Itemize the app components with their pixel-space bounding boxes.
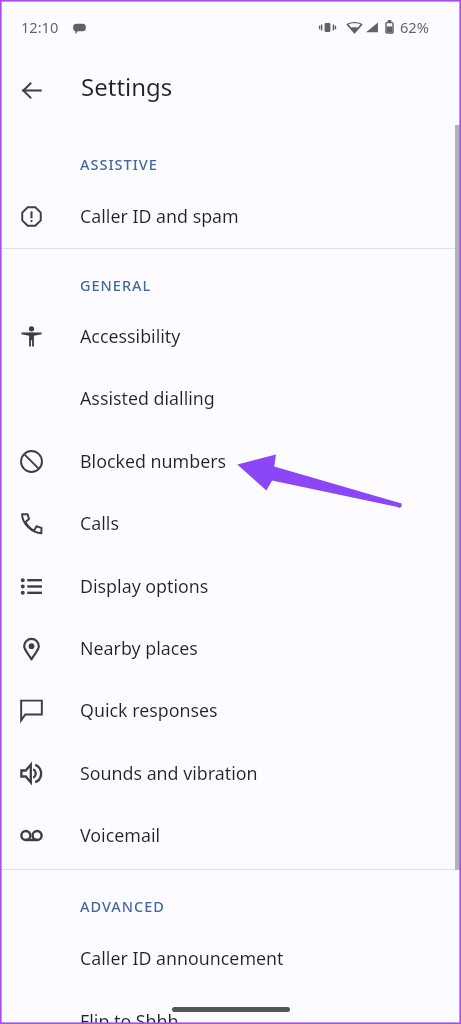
staticText: Assisted dialling [80,386,215,410]
button[interactable]: Calls [0,492,461,554]
staticText: Nearby places [80,636,198,660]
staticText: Accessibility [80,324,181,348]
staticText: Sounds and vibration [80,761,258,785]
button[interactable]: Voicemail [0,804,461,866]
staticText: Blocked numbers [80,449,227,473]
button[interactable]: Quick responses [0,679,461,741]
staticText: 12:10 [21,17,59,37]
button[interactable]: Nearby places [0,617,461,679]
staticText: Voicemail [80,823,161,847]
staticText: Quick responses [80,698,218,722]
staticText: GENERAL [80,275,152,295]
staticText: ADVANCED [80,896,165,916]
button[interactable]: Caller ID announcement [0,927,461,989]
button[interactable]: Display options [0,555,461,617]
staticText: Calls [80,511,119,535]
staticText: Flip to Shhh [80,1009,179,1024]
staticText: 62% [400,17,429,37]
button[interactable]: Blocked numbers [0,430,461,492]
staticText: Caller ID and spam [80,204,239,228]
staticText: Display options [80,574,209,598]
staticText: Caller ID announcement [80,946,284,970]
button[interactable]: Back [7,66,55,114]
button[interactable]: Accessibility [0,305,461,367]
button[interactable]: Flip to Shhh [0,990,461,1024]
button[interactable]: Assisted dialling [0,367,461,429]
staticText: Settings [81,70,173,103]
button[interactable]: Sounds and vibration [0,742,461,804]
staticText: ASSISTIVE [80,154,158,174]
button[interactable]: Caller ID and spam [0,185,461,247]
